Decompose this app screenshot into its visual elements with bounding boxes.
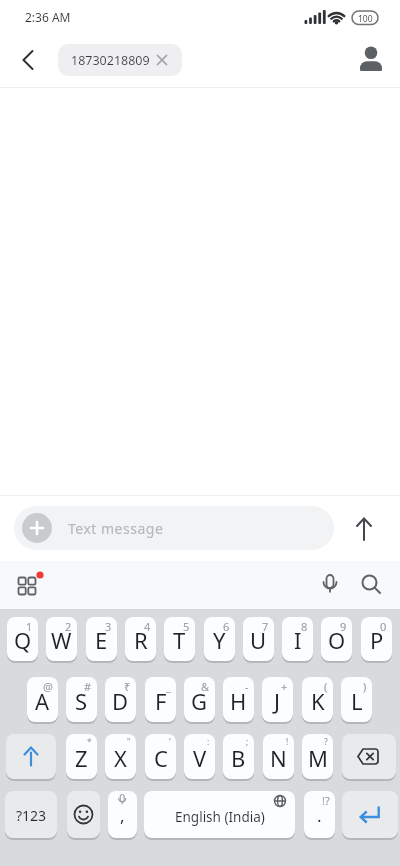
staticText: ; (246, 736, 249, 748)
staticText: ? (324, 736, 328, 748)
staticText: . (317, 804, 322, 827)
button[interactable]: X (105, 734, 136, 779)
button[interactable] (12, 44, 44, 76)
staticText: Text message (68, 519, 164, 538)
staticText: 2 (65, 619, 72, 634)
button[interactable]: , (108, 791, 137, 838)
staticText: 1 (26, 619, 33, 634)
staticText: 3 (105, 619, 112, 634)
staticText: _ (166, 679, 171, 694)
staticText: @ (43, 679, 53, 694)
button[interactable] (356, 45, 386, 75)
staticText: V (193, 743, 207, 773)
staticText: R (134, 625, 148, 655)
staticText: Y (213, 625, 226, 655)
button[interactable]: U (243, 617, 274, 661)
staticText: ( (324, 679, 328, 694)
staticText: - (245, 679, 249, 694)
button[interactable] (346, 511, 382, 547)
staticText: D (112, 686, 129, 716)
staticText: 2:36 AM (25, 9, 71, 25)
staticText: A (35, 686, 50, 716)
button[interactable]: O (321, 617, 352, 661)
button[interactable]: Z (66, 734, 97, 779)
staticText: M (308, 743, 328, 773)
staticText: J (274, 686, 281, 716)
staticText: X (114, 743, 127, 773)
staticText: # (84, 679, 92, 694)
staticText: ) (363, 679, 367, 694)
staticText: B (231, 743, 246, 773)
button[interactable]: S (66, 677, 97, 722)
button[interactable]: A (27, 677, 58, 722)
staticText: , (120, 804, 125, 827)
button[interactable]: ?123 (5, 791, 57, 838)
button[interactable]: C (145, 734, 176, 779)
button[interactable]: English (India) (144, 791, 295, 838)
staticText: 8 (301, 619, 308, 634)
staticText: 18730218809 (71, 52, 150, 69)
button[interactable]: P (361, 617, 392, 661)
staticText: 9 (340, 619, 347, 634)
button[interactable]: W (46, 617, 77, 661)
button[interactable] (342, 734, 396, 779)
staticText: G (191, 686, 208, 716)
staticText: !? (322, 793, 330, 808)
staticText: : (207, 736, 210, 748)
staticText: W (51, 625, 72, 655)
button[interactable]: Y (204, 617, 235, 661)
staticText: " (127, 736, 131, 748)
button[interactable]: H (223, 677, 254, 722)
staticText: E (95, 625, 108, 655)
staticText: Q (14, 625, 32, 655)
staticText: O (328, 625, 346, 655)
staticText: ! (286, 736, 289, 748)
button[interactable]: . (304, 791, 335, 838)
button[interactable] (315, 570, 345, 600)
button[interactable]: M (302, 734, 333, 779)
staticText: N (270, 743, 287, 773)
staticText: 5 (183, 619, 190, 634)
button[interactable] (67, 791, 100, 838)
button[interactable]: 18730218809 (58, 44, 182, 76)
button[interactable] (357, 570, 387, 600)
staticText: 100 (358, 13, 373, 25)
button[interactable]: Text message (14, 506, 334, 550)
staticText: L (351, 686, 363, 716)
button[interactable]: Q (7, 617, 38, 661)
staticText: P (370, 625, 384, 655)
button[interactable] (6, 734, 56, 779)
button[interactable]: J (262, 677, 293, 722)
staticText: C (154, 743, 168, 773)
button[interactable]: T (164, 617, 195, 661)
button[interactable] (14, 570, 44, 600)
button[interactable]: K (302, 677, 333, 722)
button[interactable]: I (282, 617, 313, 661)
staticText: 7 (262, 619, 269, 634)
staticText: English (India) (175, 808, 265, 826)
button[interactable]: F (145, 677, 176, 722)
staticText: ₹ (124, 679, 131, 694)
staticText: 4 (144, 619, 151, 634)
button[interactable]: N (263, 734, 294, 779)
staticText: ?123 (16, 806, 47, 825)
staticText: I (294, 625, 302, 655)
staticText: K (311, 686, 325, 716)
staticText: + (281, 679, 288, 694)
button[interactable]: R (125, 617, 156, 661)
button[interactable] (22, 513, 52, 543)
staticText: 6 (223, 619, 230, 634)
staticText: Z (75, 743, 88, 773)
staticText: T (173, 625, 186, 655)
button[interactable]: V (184, 734, 215, 779)
button[interactable]: G (184, 677, 215, 722)
button[interactable] (342, 791, 398, 838)
staticText: 0 (380, 619, 387, 634)
staticText: * (87, 736, 92, 748)
button[interactable]: L (341, 677, 372, 722)
button[interactable]: B (223, 734, 254, 779)
button[interactable]: D (105, 677, 136, 722)
button[interactable]: E (86, 617, 117, 661)
staticText: F (155, 686, 167, 716)
staticText: ' (169, 736, 171, 748)
